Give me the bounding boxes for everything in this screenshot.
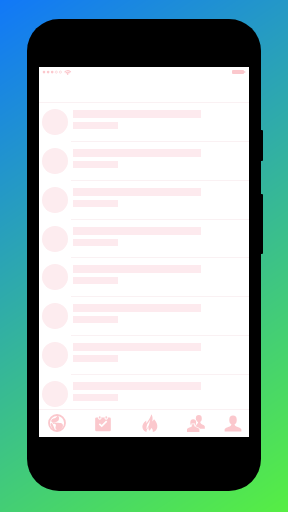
- button[interactable]: [39, 296, 249, 335]
- button[interactable]: [39, 374, 249, 413]
- button[interactable]: [39, 141, 249, 180]
- button[interactable]: [39, 180, 249, 219]
- button[interactable]: Navigation item: [138, 412, 162, 434]
- button[interactable]: [39, 335, 249, 374]
- button[interactable]: [39, 102, 249, 141]
- button[interactable]: Navigation item: [45, 412, 69, 434]
- button[interactable]: [39, 219, 249, 258]
- button[interactable]: Navigation item: [91, 412, 115, 434]
- button[interactable]: Navigation item: [221, 412, 245, 434]
- button[interactable]: [39, 257, 249, 296]
- button[interactable]: Navigation item: [184, 412, 208, 434]
